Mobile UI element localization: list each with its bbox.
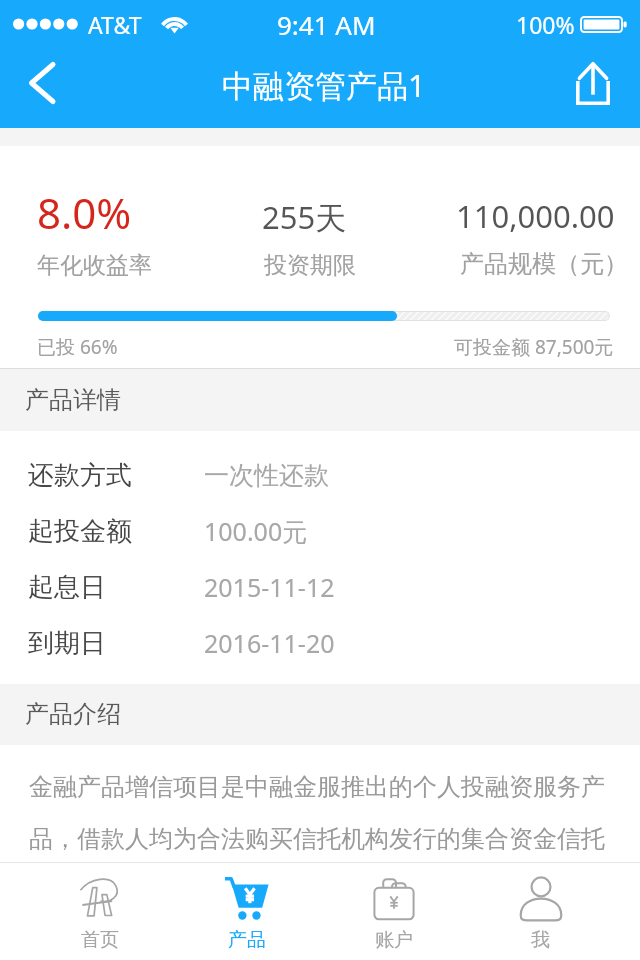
button[interactable]: Share (564, 46, 640, 128)
staticText: 金融产品增信项目是中融金服推出的个人投融资服务产品，借款人均为合法购买信托机构发… (29, 772, 609, 854)
staticText: 一次性还款 (204, 460, 329, 491)
staticText: 110,000.00 (456, 195, 615, 237)
staticText: 产品详情 (25, 385, 121, 415)
staticText: 9:41 AM (277, 7, 376, 42)
staticText: 我 (531, 928, 550, 952)
button[interactable]: 首页 (26, 863, 173, 960)
button[interactable]: 起息日 (0, 559, 640, 615)
staticText: AT&T (88, 9, 142, 40)
staticText: 投资期限 (264, 251, 356, 280)
button[interactable]: 到期日 (0, 615, 640, 671)
staticText: 产品 (228, 928, 266, 952)
staticText: 2015-11-12 (204, 570, 335, 604)
staticText: 首页 (81, 928, 119, 952)
staticText: 起投金额 (28, 515, 132, 548)
staticText: 产品介绍 (25, 699, 121, 729)
staticText: 还款方式 (28, 459, 132, 492)
staticText: 可投金额 87,500元 (454, 334, 614, 360)
button[interactable]: 我 (467, 863, 614, 960)
button[interactable]: 还款方式 (0, 447, 640, 503)
staticText: 账户 (375, 928, 413, 952)
staticText: 年化收益率 (37, 251, 152, 280)
button[interactable]: 产品 (173, 863, 320, 960)
staticText: 已投 66% (37, 334, 118, 360)
staticText: 8.0% (37, 184, 132, 241)
staticText: 100% (516, 9, 575, 40)
staticText: 100.00元 (204, 514, 308, 548)
staticText: 起息日 (28, 571, 106, 604)
staticText: 2016-11-20 (204, 626, 335, 660)
staticText: 到期日 (28, 627, 106, 660)
button[interactable]: Back (0, 46, 76, 128)
button[interactable]: 起投金额 (0, 503, 640, 559)
staticText: 产品规模（元） (460, 249, 628, 279)
staticText: 中融资管产品1 (222, 64, 426, 106)
button[interactable]: 账户 (320, 863, 467, 960)
staticText: 255天 (262, 196, 347, 238)
